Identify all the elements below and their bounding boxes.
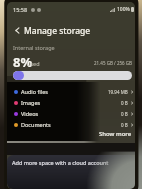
staticText: 8% — [13, 53, 33, 71]
staticText: Videos — [21, 110, 39, 117]
staticText: 21.45 GB / 256 GB — [94, 60, 132, 66]
staticText: Manage storage — [24, 25, 91, 37]
button[interactable]: Documents — [7, 119, 135, 130]
staticText: 15:58 — [13, 6, 28, 13]
button[interactable]: Back — [12, 25, 23, 36]
button[interactable]: Audio files — [7, 86, 135, 97]
staticText: used — [27, 60, 40, 67]
staticText: 100% — [117, 6, 130, 13]
staticText: Add more space with a cloud account — [12, 159, 109, 166]
staticText: 0 B — [121, 100, 128, 106]
button[interactable]: Videos — [7, 108, 135, 119]
staticText: 19.94 MB — [108, 89, 128, 95]
staticText: Images — [21, 99, 41, 106]
staticText: Audio files — [21, 88, 48, 95]
staticText: Internal storage — [13, 44, 55, 51]
button[interactable]: Show more — [97, 129, 134, 139]
button[interactable]: Add more space with a cloud account — [7, 155, 135, 189]
staticText: Show more — [99, 130, 132, 138]
staticText: Documents — [21, 121, 51, 128]
staticText: 0 B — [121, 111, 128, 117]
button[interactable]: Images — [7, 97, 135, 108]
staticText: 0 B — [121, 122, 128, 128]
